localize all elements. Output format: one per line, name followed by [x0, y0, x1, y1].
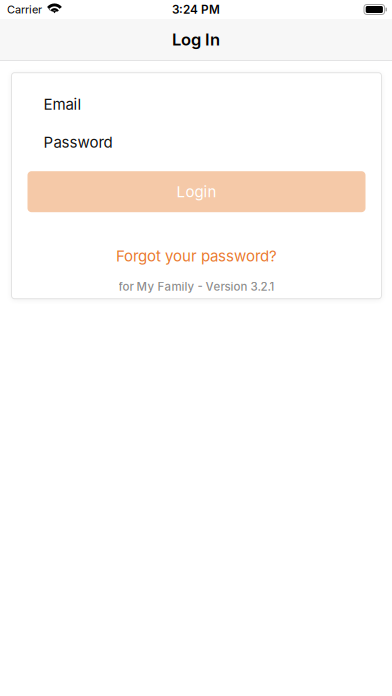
- staticText: for My Family - Version 3.2.1: [118, 280, 274, 294]
- staticText: Login: [176, 183, 216, 201]
- staticText: 3:24 PM: [172, 2, 220, 17]
- button[interactable]: Login: [27, 171, 365, 212]
- staticText: Password: [43, 133, 112, 151]
- button[interactable]: Forgot your password?: [27, 246, 365, 265]
- staticText: Forgot your password?: [116, 247, 277, 265]
- staticText: Email: [43, 95, 81, 113]
- button[interactable]: Password: [11, 133, 381, 152]
- staticText: Carrier: [7, 3, 42, 16]
- button[interactable]: Email: [11, 95, 381, 114]
- staticText: Log In: [172, 29, 220, 49]
